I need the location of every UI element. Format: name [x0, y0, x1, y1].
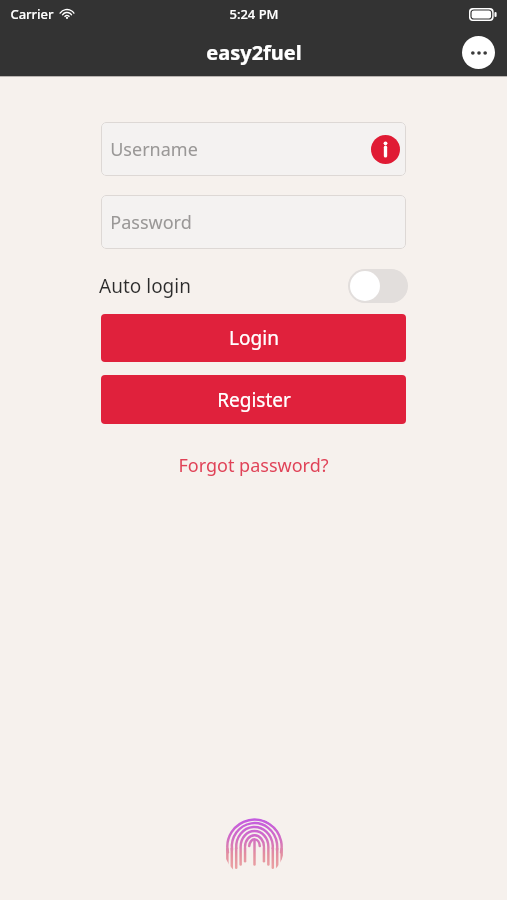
button[interactable]: Register — [101, 375, 406, 424]
staticText: easy2fuel — [206, 39, 302, 66]
staticText: 5:24 PM — [229, 5, 279, 23]
staticText: Username — [110, 137, 198, 162]
staticText: Register — [217, 387, 291, 413]
button[interactable]: Username info — [371, 135, 400, 164]
button[interactable]: Auto login toggle — [348, 269, 408, 303]
button[interactable]: Login — [101, 314, 406, 362]
staticText: Forgot password? — [178, 453, 329, 478]
staticText: Auto login — [99, 273, 191, 299]
staticText: Login — [229, 325, 279, 351]
staticText: Password — [110, 210, 192, 235]
button[interactable]: Password — [101, 195, 406, 249]
staticText: Carrier — [10, 5, 54, 23]
button[interactable]: More options — [462, 36, 495, 69]
button[interactable]: Username — [101, 122, 406, 176]
button[interactable]: Forgot password? — [170, 449, 337, 482]
button[interactable]: Fingerprint login — [224, 818, 284, 878]
